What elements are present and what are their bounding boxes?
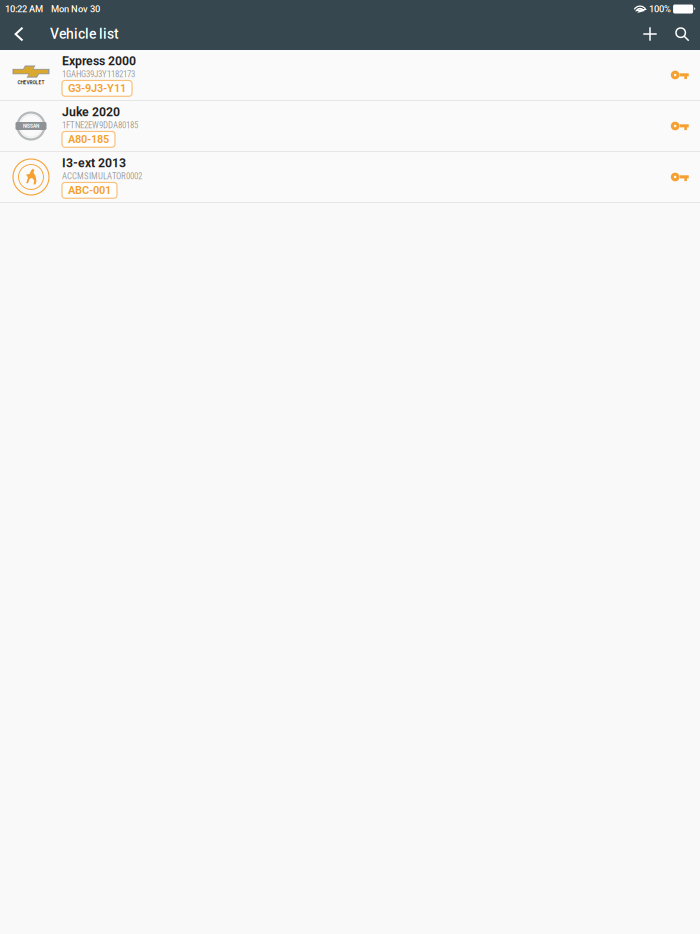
staticText: 100% [649, 3, 671, 14]
button[interactable]: I3-ext 2013 [0, 152, 700, 202]
staticText: A80-185 [68, 133, 109, 146]
staticText: G3-9J3-Y11 [68, 82, 126, 95]
staticText: Juke 2020 [62, 105, 120, 119]
staticText: Vehicle list [50, 26, 119, 42]
staticText: CHEVROLET [17, 80, 44, 85]
staticText: Mon Nov 30 [51, 3, 100, 14]
button[interactable]: NISSAN [0, 101, 700, 151]
staticText: 10:22 AM [5, 3, 43, 14]
staticText: ABC-001 [68, 184, 111, 197]
button[interactable]: CHEVROLET [0, 50, 700, 100]
button[interactable]: Add vehicle [634, 18, 666, 50]
staticText: NISSAN [23, 123, 39, 129]
staticText: ACCMSIMULATOR0002 [62, 171, 142, 181]
button[interactable]: Back [0, 18, 38, 50]
staticText: 1GAHG39J3Y1182173 [62, 69, 135, 79]
button[interactable]: Search [666, 18, 698, 50]
staticText: 1FTNE2EW9DDA80185 [62, 120, 138, 130]
staticText: I3-ext 2013 [62, 156, 126, 170]
staticText: Express 2000 [62, 54, 136, 68]
